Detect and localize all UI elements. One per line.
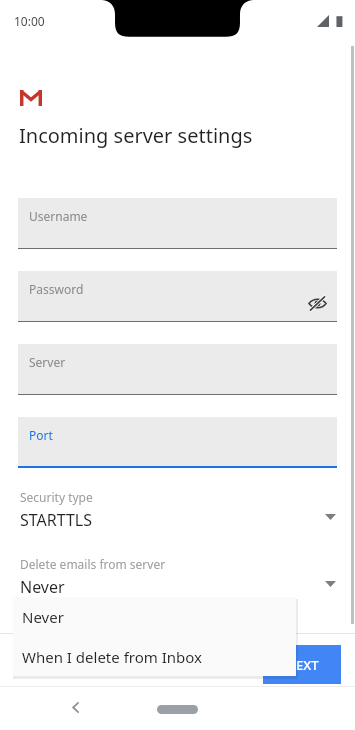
button[interactable]: Never bbox=[13, 597, 296, 637]
staticText: Server bbox=[29, 354, 66, 370]
staticText: Port bbox=[29, 427, 53, 443]
button[interactable]: NEXT bbox=[263, 645, 341, 684]
staticText: Security type bbox=[20, 489, 93, 505]
staticText: Password bbox=[29, 281, 84, 297]
staticText: When I delete from Inbox bbox=[22, 647, 202, 667]
other: Signal and battery bbox=[317, 15, 344, 27]
button[interactable]: Server bbox=[18, 344, 337, 395]
staticText: Incoming server settings bbox=[19, 122, 253, 149]
button[interactable]: Username bbox=[18, 198, 337, 249]
button[interactable]: When I delete from Inbox bbox=[13, 637, 296, 676]
staticText: NEXT bbox=[286, 656, 319, 674]
staticText: 10:00 bbox=[14, 13, 45, 29]
button[interactable]: Back bbox=[69, 701, 82, 714]
button[interactable]: Delete emails from server bbox=[0, 556, 355, 604]
staticText: Delete emails from server bbox=[20, 556, 166, 572]
staticText: Never bbox=[20, 576, 65, 598]
staticText: STARTTLS bbox=[20, 509, 93, 531]
button[interactable]: Port bbox=[18, 417, 337, 468]
staticText: Never bbox=[22, 607, 64, 627]
button[interactable]: Security type bbox=[0, 489, 355, 537]
button[interactable]: Show password bbox=[308, 294, 327, 313]
button[interactable]: Password bbox=[18, 271, 337, 322]
button[interactable]: Home bbox=[157, 705, 198, 714]
staticText: Username bbox=[29, 208, 88, 224]
